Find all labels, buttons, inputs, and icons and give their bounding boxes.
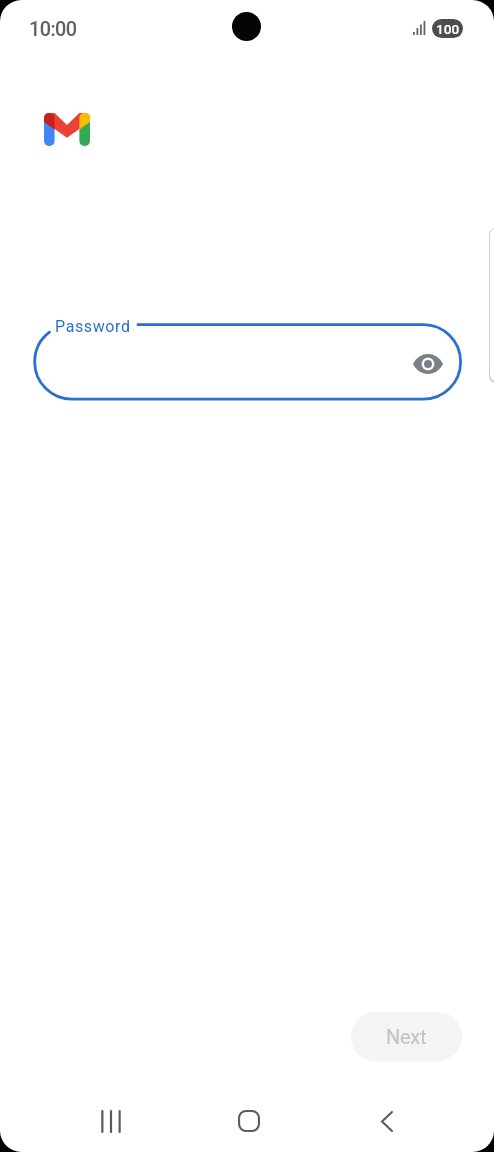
staticText: 100 [436, 21, 460, 37]
staticText: Next [386, 1025, 427, 1048]
button[interactable]: Next [351, 1012, 462, 1061]
button[interactable]: Home [180, 1090, 318, 1152]
button[interactable]: Recents [41, 1090, 180, 1152]
button[interactable]: Back [318, 1090, 456, 1152]
staticText: 10:00 [29, 18, 77, 41]
staticText: Password [55, 317, 131, 336]
button[interactable]: Show password [406, 342, 450, 386]
